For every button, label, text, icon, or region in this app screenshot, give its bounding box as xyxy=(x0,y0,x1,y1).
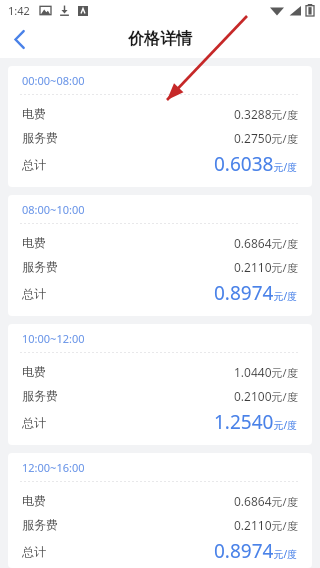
staticText: 0.6864元/度 xyxy=(234,493,298,509)
staticText: 服务费 xyxy=(22,517,58,532)
staticText: 0.2750元/度 xyxy=(234,130,298,146)
button[interactable]: Back xyxy=(0,20,38,58)
staticText: 电费 xyxy=(22,364,46,379)
staticText: 0.2110元/度 xyxy=(234,259,298,275)
button[interactable]: 00:00~08:00 xyxy=(8,66,312,187)
staticText: 总计 xyxy=(22,157,46,172)
staticText: 电费 xyxy=(22,106,46,121)
staticText: 服务费 xyxy=(22,130,58,145)
staticText: 总计 xyxy=(22,415,46,430)
staticText: 服务费 xyxy=(22,388,58,403)
staticText: 电费 xyxy=(22,235,46,250)
staticText: 服务费 xyxy=(22,259,58,274)
staticText: 08:00~10:00 xyxy=(22,202,85,217)
staticText: 00:00~08:00 xyxy=(22,73,85,88)
button[interactable]: 10:00~12:00 xyxy=(8,324,312,445)
staticText: 1:42 xyxy=(8,3,30,18)
staticText: 0.8974元/度 xyxy=(214,280,298,306)
staticText: 0.6864元/度 xyxy=(234,235,298,251)
staticText: 0.2110元/度 xyxy=(234,517,298,533)
staticText: 总计 xyxy=(22,544,46,559)
button[interactable]: 12:00~16:00 xyxy=(8,453,312,568)
staticText: 1.2540元/度 xyxy=(214,409,298,435)
staticText: 10:00~12:00 xyxy=(22,331,85,346)
staticText: 价格详情 xyxy=(128,29,192,49)
staticText: 0.2100元/度 xyxy=(234,388,298,404)
staticText: 1.0440元/度 xyxy=(234,364,298,380)
button[interactable]: 08:00~10:00 xyxy=(8,195,312,316)
staticText: 总计 xyxy=(22,286,46,301)
staticText: 12:00~16:00 xyxy=(22,460,85,475)
staticText: 电费 xyxy=(22,493,46,508)
staticText: 0.8974元/度 xyxy=(214,538,298,564)
staticText: 0.6038元/度 xyxy=(214,151,298,177)
staticText: 0.3288元/度 xyxy=(234,106,298,122)
